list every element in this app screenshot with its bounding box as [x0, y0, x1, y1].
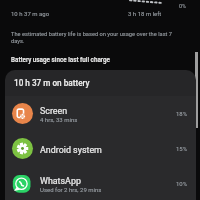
- button[interactable]: Screen: [5, 96, 196, 131]
- staticText: 4 hrs, 33 mins: [40, 116, 78, 123]
- staticText: WhatsApp: [40, 176, 81, 186]
- button[interactable]: 10 h 37 m on battery: [5, 70, 196, 96]
- staticText: 3 h 18 m left: [128, 10, 162, 17]
- button[interactable]: Android system: [5, 131, 196, 166]
- staticText: 0%: [179, 3, 187, 9]
- staticText: Battery usage since last full charge: [11, 56, 110, 63]
- button[interactable]: WhatsApp: [5, 166, 196, 200]
- staticText: 18%: [176, 110, 188, 117]
- staticText: 15%: [176, 145, 188, 152]
- staticText: Android system: [40, 145, 102, 155]
- staticText: Screen: [40, 106, 68, 116]
- staticText: The estimated battery life is based on y…: [11, 31, 183, 44]
- staticText: 10 h 37 m on battery: [14, 78, 90, 88]
- staticText: Used for 2 hrs, 29 mins: [40, 186, 102, 193]
- staticText: 10%: [176, 180, 188, 187]
- staticText: 10 h 37 m ago: [11, 10, 50, 17]
